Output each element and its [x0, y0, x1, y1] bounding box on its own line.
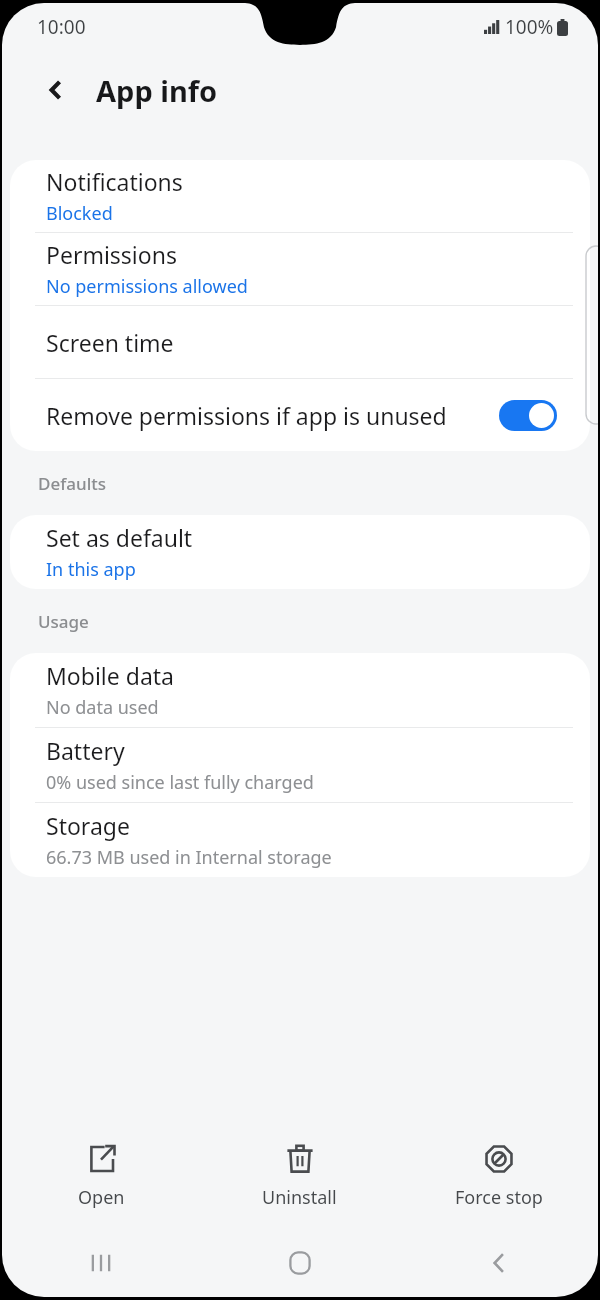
button[interactable]: Storage [10, 803, 590, 877]
staticText: 66.73 MB used in Internal storage [46, 845, 332, 870]
button[interactable]: Back [399, 1229, 598, 1297]
staticText: Notifications [46, 166, 183, 197]
button[interactable]: Back [34, 68, 78, 112]
button[interactable]: Notifications [10, 160, 590, 232]
button[interactable]: Battery [10, 728, 590, 802]
button[interactable]: Mobile data [10, 653, 590, 727]
staticText: 10:00 [37, 14, 86, 40]
staticText: App info [96, 71, 218, 110]
staticText: Set as default [46, 522, 193, 553]
staticText: 0% used since last fully charged [46, 770, 314, 795]
staticText: No permissions allowed [46, 274, 248, 299]
staticText: Open [78, 1185, 125, 1210]
button[interactable]: Recents [2, 1229, 200, 1297]
staticText: Blocked [46, 201, 113, 226]
button[interactable]: Set as default [10, 515, 590, 589]
staticText: Defaults [38, 472, 106, 495]
staticText: In this app [46, 557, 136, 582]
button[interactable]: Home [200, 1229, 399, 1297]
button[interactable]: Permissions [10, 233, 590, 305]
staticText: Uninstall [262, 1185, 337, 1210]
staticText: 100% [505, 14, 554, 40]
button[interactable]: Open [2, 1124, 200, 1229]
staticText: Storage [46, 810, 130, 841]
button[interactable]: Screen time [10, 306, 590, 378]
staticText: Screen time [46, 327, 174, 358]
staticText: Battery [46, 735, 125, 766]
staticText: Usage [38, 610, 89, 633]
staticText: Permissions [46, 239, 177, 270]
button[interactable]: Uninstall [200, 1124, 399, 1229]
staticText: Force stop [455, 1185, 543, 1210]
button[interactable]: Remove permissions if app is unused [10, 379, 590, 451]
staticText: Remove permissions if app is unused [46, 400, 499, 431]
staticText: Mobile data [46, 660, 174, 691]
staticText: No data used [46, 695, 159, 720]
button[interactable]: Force stop [399, 1124, 598, 1229]
